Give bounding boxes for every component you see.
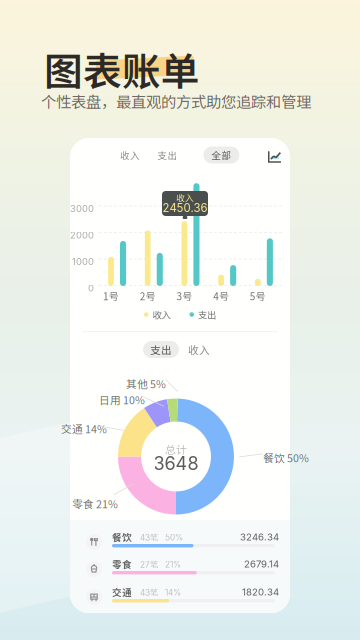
staticText: 2450.36 [162, 201, 207, 215]
staticText: 2号 [140, 289, 156, 303]
button[interactable]: 全部 [203, 146, 239, 163]
staticText: 3648 [153, 453, 198, 474]
staticText: 零食 21% [72, 496, 118, 511]
staticText: 支出 [198, 308, 216, 321]
staticText: 餐饮 50% [263, 450, 309, 465]
staticText: 收入 [188, 342, 210, 357]
staticText: 43笔 [140, 587, 158, 598]
staticText: 交通 [112, 585, 132, 599]
button[interactable]: 收入 [184, 341, 214, 358]
staticText: 收入 [120, 148, 140, 162]
button[interactable]: 餐饮 [86, 530, 279, 554]
staticText: 21% [165, 559, 181, 569]
staticText: 零食 [112, 557, 132, 571]
staticText: 其他 5% [126, 376, 166, 391]
staticText: 总计 [165, 441, 187, 457]
staticText: 收入 [176, 191, 194, 204]
staticText: 3000 [70, 203, 94, 214]
staticText: 日用 10% [99, 392, 145, 407]
button[interactable]: 零食 [86, 557, 279, 581]
button[interactable]: 切换图表类型 [264, 147, 282, 163]
staticText: 全部 [211, 148, 231, 162]
staticText: 餐饮 [112, 530, 132, 544]
staticText: 14% [165, 587, 181, 597]
staticText: 2679.14 [244, 558, 279, 570]
staticText: 个性表盘，最直观的方式助您追踪和管理 [41, 90, 311, 112]
staticText: 收入 [152, 308, 170, 321]
staticText: 50% [165, 532, 183, 542]
staticText: 支出 [150, 342, 172, 357]
staticText: 27笔 [140, 559, 158, 570]
staticText: 2000 [70, 230, 94, 241]
staticText: 0 [88, 283, 94, 294]
staticText: 5号 [250, 289, 266, 303]
button[interactable]: 支出 [153, 147, 181, 163]
staticText: 3号 [176, 289, 192, 303]
staticText: 1820.34 [242, 586, 279, 598]
staticText: 1号 [103, 289, 119, 303]
button[interactable]: 支出 [143, 341, 179, 358]
staticText: 43笔 [140, 532, 158, 543]
staticText: 3246.34 [240, 531, 279, 543]
staticText: 4号 [213, 289, 229, 303]
staticText: 交通 14% [61, 421, 107, 436]
staticText: 1000 [72, 256, 94, 267]
button[interactable]: 交通 [86, 585, 279, 609]
button[interactable]: 收入 [116, 147, 144, 163]
staticText: 图表账单 [44, 41, 200, 97]
staticText: 支出 [157, 148, 177, 162]
